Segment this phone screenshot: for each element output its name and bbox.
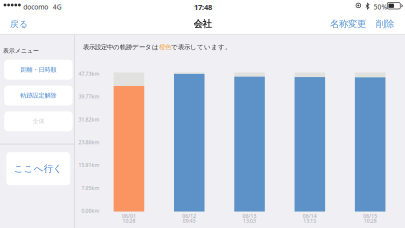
button[interactable]: ここへ行く [6, 152, 70, 185]
staticText: で表示しています。 [171, 43, 231, 51]
button[interactable]: 距離・日時順 [4, 60, 73, 80]
button[interactable]: 全体 [4, 111, 73, 131]
staticText: 表示メニュー [3, 47, 39, 54]
staticText: 06/14 [303, 212, 317, 219]
staticText: 50% [373, 2, 387, 11]
staticText: 06/13 [242, 212, 256, 219]
button[interactable]: 削除 [376, 13, 394, 35]
staticText: 31.82km [78, 116, 99, 123]
staticText: 表示設定中の軌跡データは [83, 43, 159, 51]
staticText: 7.95km [81, 184, 99, 191]
staticText: 会社 [193, 18, 211, 30]
staticText: 10:28 [122, 217, 135, 224]
button[interactable]: 軌跡設定解除 [4, 85, 73, 105]
staticText: 10:28 [364, 217, 377, 224]
staticText: 軌跡設定解除 [20, 92, 56, 99]
staticText: 15.91km [78, 162, 99, 169]
staticText: 橙色 [159, 43, 171, 51]
staticText: 17:48 [194, 2, 212, 12]
staticText: docomo [23, 2, 48, 11]
staticText: 06/12 [182, 212, 196, 219]
staticText: 39.77km [78, 93, 99, 100]
staticText: 47.73km [78, 70, 99, 77]
staticText: 06/01 [122, 212, 136, 219]
staticText: 13:15 [303, 217, 316, 224]
staticText: 戻る [10, 18, 28, 29]
staticText: 09:45 [183, 217, 196, 224]
staticText: 06/15 [363, 212, 377, 219]
staticText: ここへ行く [14, 163, 63, 175]
staticText: 距離・日時順 [20, 66, 56, 73]
staticText: 削除 [376, 18, 394, 30]
staticText: 全体 [32, 117, 44, 125]
staticText: 4G [53, 2, 62, 11]
button[interactable]: 名称変更 [330, 13, 366, 35]
staticText: 13:03 [243, 217, 256, 224]
staticText: 23.86km [78, 139, 99, 146]
button[interactable]: 戻る [4, 13, 34, 35]
staticText: 0.00km [81, 207, 99, 214]
staticText: 名称変更 [330, 18, 366, 30]
